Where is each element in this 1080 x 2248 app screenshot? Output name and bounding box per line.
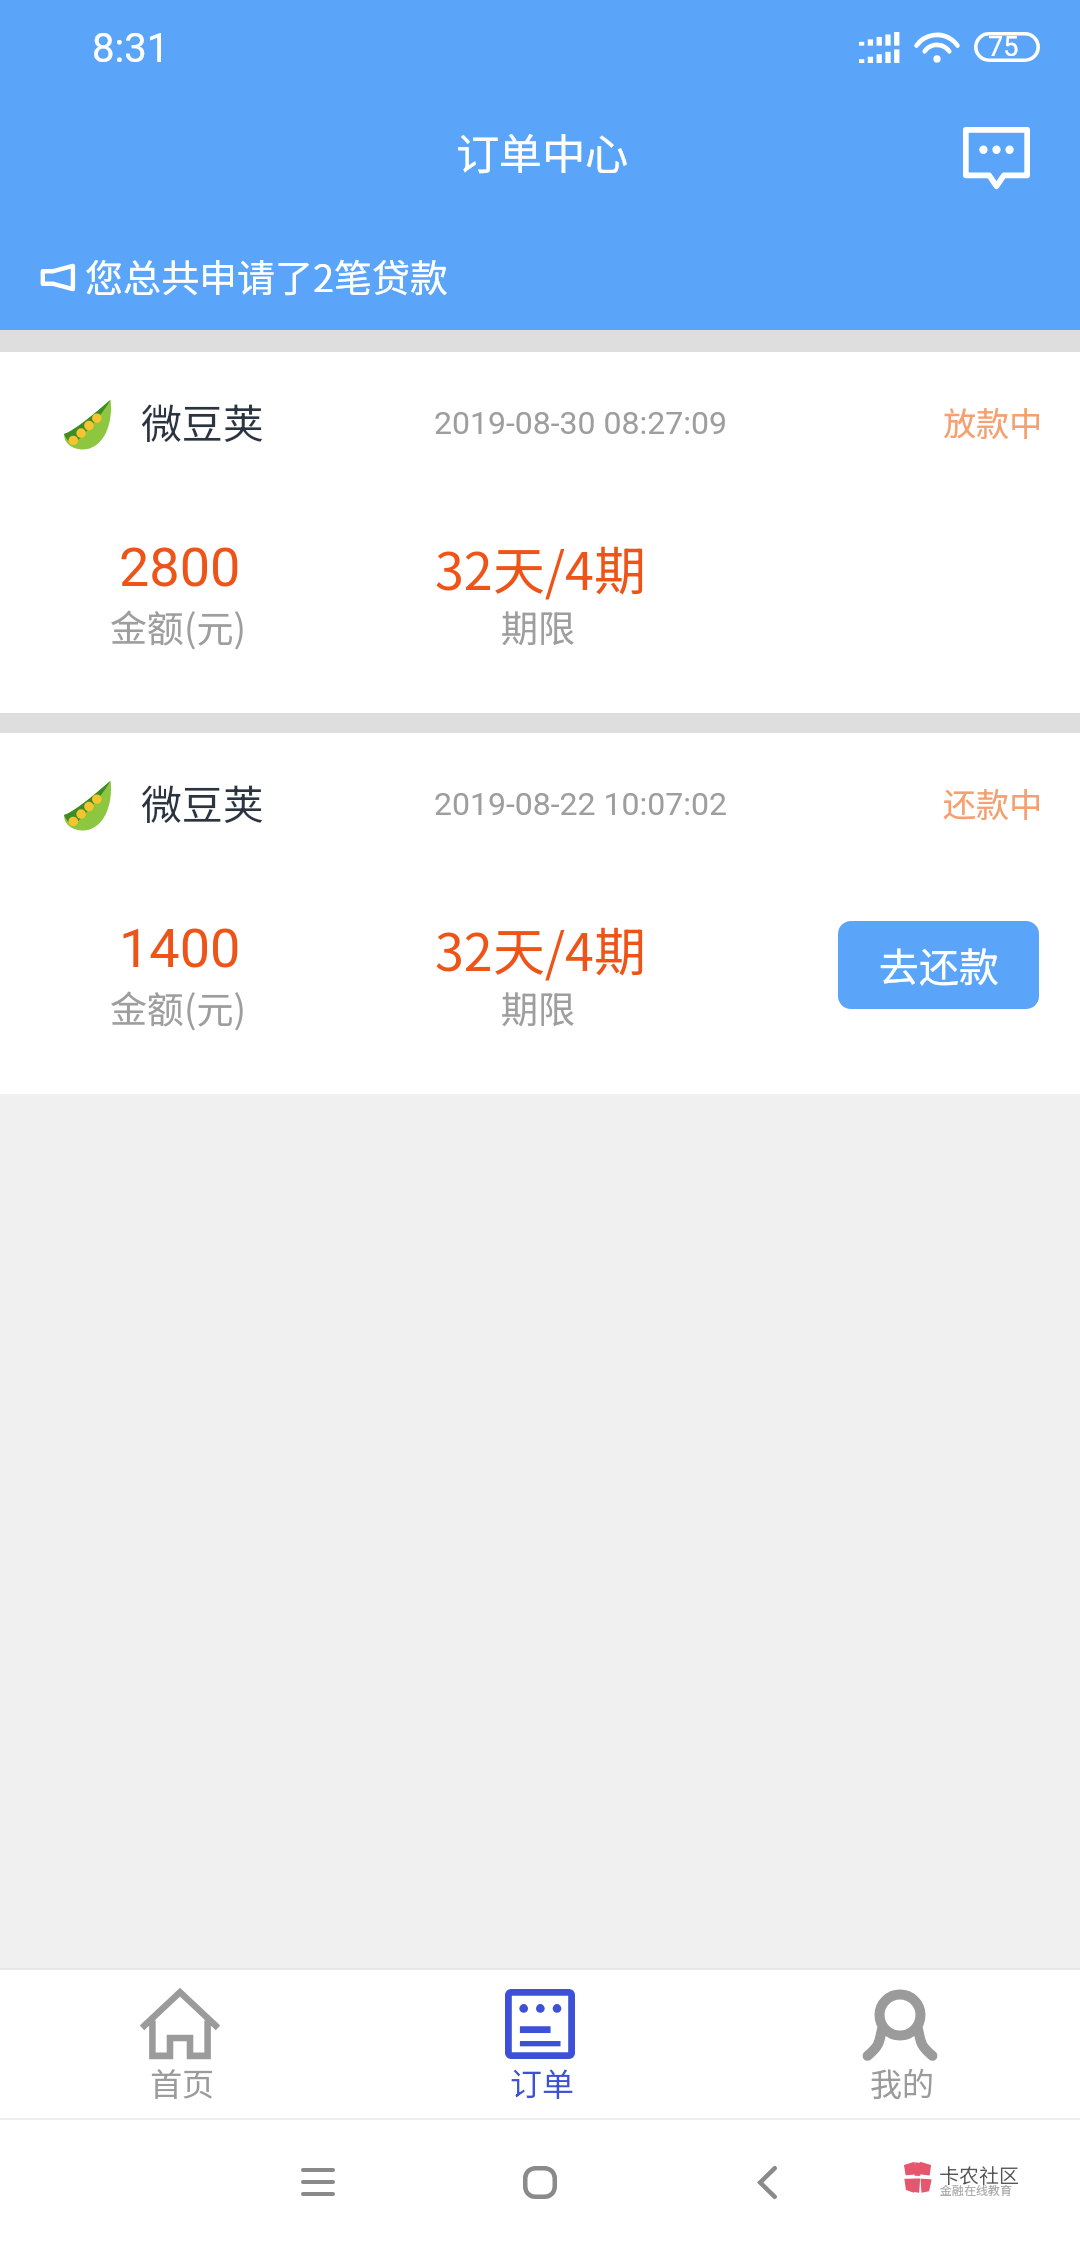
button[interactable]: 首页 <box>0 1968 360 2118</box>
staticText: 首页 <box>150 2059 215 2105</box>
button[interactable]: Back <box>718 2132 816 2232</box>
staticText: 2800 <box>119 536 241 599</box>
staticText: 金融在线教育 <box>940 2181 1013 2198</box>
button[interactable]: 微豆荚 <box>0 352 1080 713</box>
button[interactable]: 微豆荚 <box>0 733 1080 1094</box>
staticText: 2019-08-30 08:27:09 <box>434 404 727 442</box>
staticText: 2019-08-22 10:07:02 <box>434 785 727 823</box>
button[interactable]: Messages <box>947 112 1045 204</box>
staticText: 订单中心 <box>456 120 628 182</box>
button[interactable]: 去还款 <box>838 921 1039 1009</box>
staticText: 32天/4期 <box>435 530 646 605</box>
staticText: 我的 <box>870 2059 935 2105</box>
staticText: 订单 <box>510 2059 575 2105</box>
staticText: 微豆荚 <box>141 772 264 831</box>
staticText: 32天/4期 <box>435 911 646 986</box>
staticText: 8:31 <box>92 25 170 72</box>
button[interactable]: Recents <box>269 2132 367 2232</box>
button[interactable]: 订单 <box>360 1968 720 2118</box>
staticText: 还款中 <box>943 779 1042 827</box>
staticText: 卡农社区 <box>939 2160 1019 2189</box>
button[interactable]: Home <box>491 2132 589 2232</box>
staticText: 期限 <box>501 980 575 1034</box>
staticText: 微豆荚 <box>141 391 264 450</box>
staticText: 您总共申请了2笔贷款 <box>85 248 449 303</box>
staticText: 放款中 <box>943 398 1042 446</box>
button[interactable]: 我的 <box>720 1968 1080 2118</box>
staticText: 去还款 <box>879 936 999 994</box>
staticText: 金额(元) <box>110 599 247 653</box>
staticText: 期限 <box>501 599 575 653</box>
staticText: 1400 <box>119 917 241 980</box>
staticText: 75 <box>988 31 1019 63</box>
staticText: 金额(元) <box>110 980 247 1034</box>
